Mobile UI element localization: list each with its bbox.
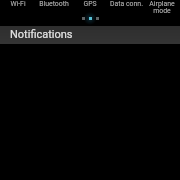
staticText: Notifications: [10, 28, 73, 41]
staticText: Wi-Fi: [10, 0, 26, 8]
button[interactable]: Airplane mode: [144, 0, 180, 13]
staticText: Data conn.: [110, 0, 143, 8]
button[interactable]: Bluetooth: [36, 0, 72, 13]
staticText: GPS: [83, 0, 97, 8]
staticText: Bluetooth: [39, 0, 69, 8]
staticText: Airplane mode: [144, 0, 180, 13]
button[interactable]: Wi-Fi: [0, 0, 36, 13]
button[interactable]: GPS: [72, 0, 108, 13]
button[interactable]: Data conn.: [108, 0, 144, 13]
button[interactable]: Notifications: [0, 26, 180, 44]
